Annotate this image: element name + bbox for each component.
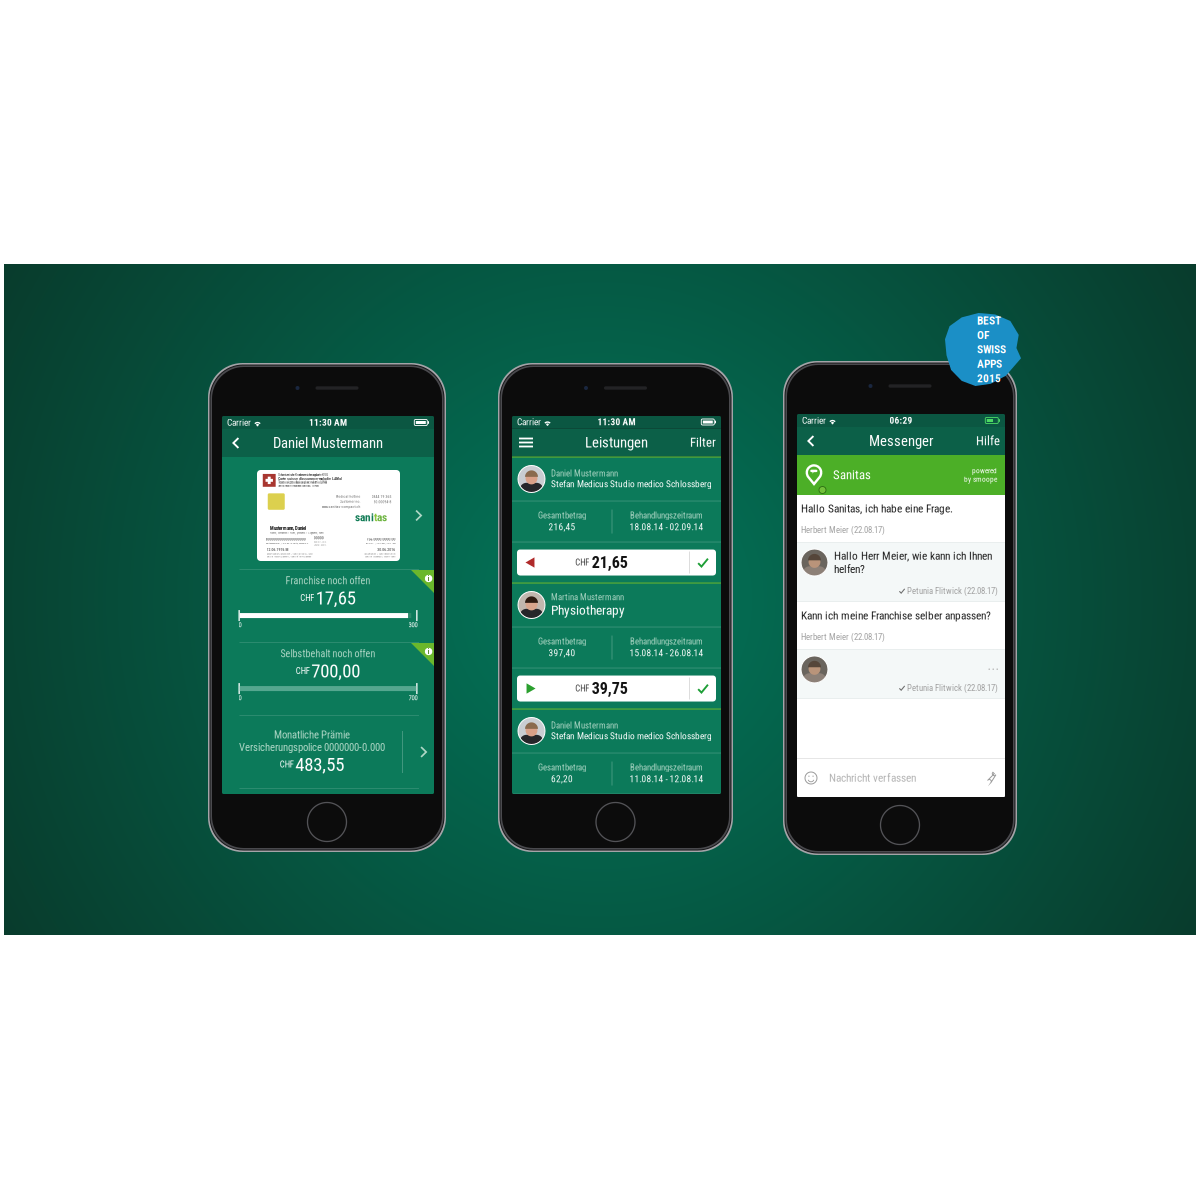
staticText: Kartennummer / No de la carte, Tessera n… bbox=[266, 542, 309, 545]
staticText: Schweizerische Krankenversicherungskarte… bbox=[278, 473, 328, 477]
staticText: AHV-Nr. / No AVS / No. AVS bbox=[365, 542, 395, 545]
staticText: 0 bbox=[238, 621, 241, 629]
staticText: 11.08.14 - 12.08.14 bbox=[629, 774, 703, 784]
staticText: Hallo Sanitas, ich habe eine Frage. bbox=[801, 502, 953, 515]
staticText: Daniel Mustermann bbox=[551, 468, 618, 479]
staticText: Customer no. bbox=[339, 499, 360, 504]
staticText: t bbox=[374, 511, 377, 524]
staticText: 11:30 AM bbox=[597, 416, 635, 427]
staticText: sani bbox=[355, 511, 374, 524]
button[interactable]: Attach bbox=[983, 770, 999, 786]
staticText: Carte suisse d'assurance-maladie LAMal bbox=[278, 477, 342, 481]
staticText: Monatliche Prämie bbox=[274, 729, 350, 741]
staticText: Versicherungspolice 0000000-0.000 bbox=[239, 741, 385, 754]
button[interactable]: Schweizerische Krankenversicherungskarte… bbox=[222, 470, 434, 561]
staticText: 30.00094-8 bbox=[373, 500, 391, 504]
staticText: 0844 19 365 bbox=[371, 495, 391, 499]
staticText: Carrier bbox=[517, 416, 541, 427]
staticText: powered bbox=[972, 466, 997, 475]
staticText: Mustermann, Daniel bbox=[270, 526, 306, 531]
staticText: Herbert Meier (22.08.17) bbox=[801, 632, 885, 642]
staticText: CHF bbox=[575, 683, 589, 694]
staticText: 39,75 bbox=[592, 679, 628, 698]
staticText: CHF bbox=[300, 593, 314, 603]
staticText: Daniel Mustermann bbox=[551, 720, 618, 731]
staticText: Sanitas bbox=[833, 468, 871, 482]
staticText: Franchise noch offen bbox=[285, 575, 370, 587]
button[interactable]: Back bbox=[802, 431, 820, 451]
staticText: Petunia Flitwick (22.08.17) bbox=[907, 586, 998, 596]
staticText: 216,45 bbox=[548, 522, 575, 532]
button[interactable]: CHF bbox=[512, 542, 721, 582]
staticText: Medical hotline bbox=[335, 494, 360, 499]
button[interactable]: Monatliche Prämie bbox=[222, 716, 434, 788]
staticText: Carrier bbox=[227, 417, 251, 428]
staticText: Data di nascita, genere / Date of birth,… bbox=[266, 555, 311, 558]
staticText: CHF bbox=[575, 557, 589, 568]
staticText: LAMal assic. bbox=[314, 543, 327, 546]
staticText: 15.08.14 - 26.08.14 bbox=[629, 648, 703, 658]
staticText: Gesamtbetrag bbox=[538, 762, 586, 773]
staticText: 00000 bbox=[314, 535, 324, 540]
staticText: 06:29 bbox=[889, 415, 912, 426]
staticText: Kann ich meine Franchise selber anpassen… bbox=[801, 609, 991, 622]
staticText: Gesamtbetrag bbox=[538, 636, 586, 647]
staticText: Filter bbox=[690, 435, 716, 450]
staticText: CHF bbox=[280, 759, 294, 770]
staticText: 756.0000.0000.00 bbox=[366, 537, 395, 541]
button[interactable]: Hilfe bbox=[976, 431, 1000, 451]
staticText: Martina Mustermann bbox=[551, 592, 624, 602]
staticText: 11:30 AM bbox=[309, 417, 347, 428]
staticText: KVG-Nr./No. bbox=[314, 540, 327, 543]
staticText: OF bbox=[977, 328, 989, 342]
staticText: by smoope bbox=[964, 475, 997, 484]
staticText: 18.08.14 - 02.09.14 bbox=[629, 522, 703, 532]
staticText: 2015 bbox=[977, 372, 1001, 385]
staticText: Swiss health insurance card acc. to KVG bbox=[278, 484, 319, 487]
staticText: 62,20 bbox=[551, 774, 573, 784]
staticText: 397,40 bbox=[548, 648, 575, 658]
staticText: Selbstbehalt noch offen bbox=[280, 648, 375, 660]
staticText: Hallo Herr Meier, wie kann ich Ihnen bbox=[834, 549, 992, 562]
button[interactable]: Filter bbox=[690, 432, 716, 452]
staticText: CHF bbox=[296, 666, 310, 676]
staticText: 700,00 bbox=[311, 660, 360, 682]
staticText: 0 bbox=[238, 694, 241, 702]
button[interactable]: Menu bbox=[517, 432, 535, 452]
staticText: Tessera svizzera d'assicurazione malatti… bbox=[278, 481, 327, 484]
button[interactable]: CHF bbox=[512, 668, 721, 708]
staticText: Gesamtbetrag bbox=[538, 510, 586, 521]
button[interactable]: Emoji bbox=[803, 770, 819, 786]
staticText: APPS bbox=[977, 357, 1002, 370]
staticText: Geburtsdatum, Geschlecht / Date de naiss… bbox=[266, 552, 312, 555]
staticText: 21,65 bbox=[592, 553, 628, 572]
staticText: 300 bbox=[408, 621, 417, 629]
staticText: BEST bbox=[977, 314, 1001, 327]
staticText: SWISS bbox=[977, 343, 1006, 356]
staticText: as bbox=[377, 511, 387, 524]
button[interactable]: Back bbox=[227, 433, 245, 453]
staticText: 12.06.1976 M bbox=[266, 547, 288, 552]
staticText: • • • bbox=[988, 665, 998, 674]
staticText: i bbox=[428, 647, 430, 656]
staticText: Nachricht verfassen bbox=[829, 771, 916, 785]
staticText: i bbox=[428, 574, 430, 583]
staticText: Ablaufdatum / Date d'expiration bbox=[364, 552, 395, 555]
staticText: helfen? bbox=[834, 562, 865, 576]
staticText: Name, Vornamen / Nom, prénoms / Cognome,… bbox=[270, 531, 324, 534]
staticText: Stefan Medicus Studio medico Schlossberg bbox=[551, 731, 712, 741]
staticText: Behandlungszeitraum bbox=[630, 636, 703, 647]
staticText: 17,65 bbox=[316, 587, 356, 609]
staticText: Daniel Mustermann bbox=[273, 434, 383, 452]
staticText: 80000000000000000000 bbox=[266, 537, 306, 541]
staticText: 483,55 bbox=[295, 754, 344, 775]
staticText: 700 bbox=[408, 694, 417, 702]
staticText: 30.06.2016 bbox=[377, 547, 395, 552]
staticText: Petunia Flitwick (22.08.17) bbox=[907, 683, 998, 693]
staticText: Behandlungszeitraum bbox=[630, 510, 703, 521]
staticText: Stefan Medicus Studio medico Schlossberg bbox=[551, 479, 712, 489]
staticText: Herbert Meier (22.08.17) bbox=[801, 525, 885, 535]
staticText: Behandlungszeitraum bbox=[630, 762, 703, 773]
staticText: Data di scadenza / Expiry date bbox=[365, 555, 395, 558]
staticText: Hilfe bbox=[976, 434, 1000, 448]
